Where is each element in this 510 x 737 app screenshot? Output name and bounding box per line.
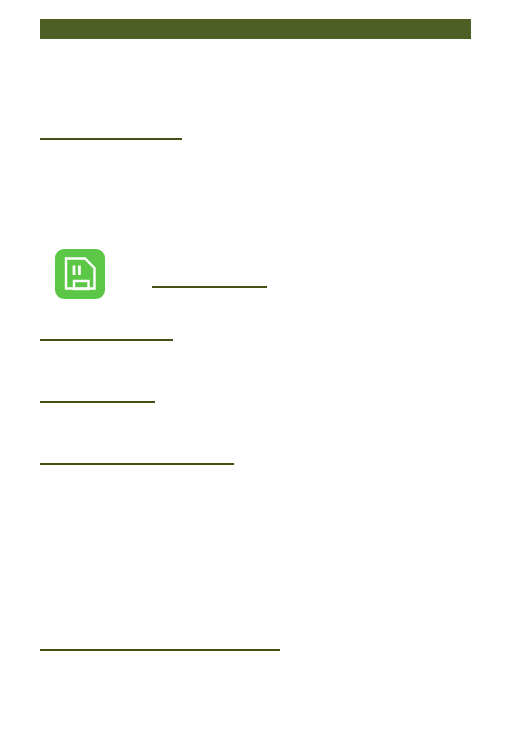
button[interactable]: Save bbox=[55, 249, 105, 299]
